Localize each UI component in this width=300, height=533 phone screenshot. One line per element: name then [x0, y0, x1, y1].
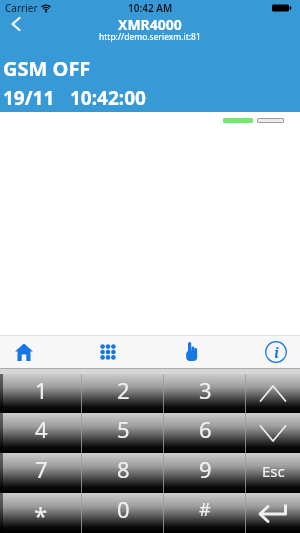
button[interactable]: 0	[82, 493, 164, 533]
button[interactable]	[246, 493, 300, 533]
staticText: 4	[35, 414, 48, 444]
button[interactable]: 8	[82, 453, 164, 493]
button[interactable]	[246, 413, 300, 453]
button[interactable]	[179, 339, 205, 365]
staticText: http://demo.seriexm.it:81	[99, 31, 201, 43]
staticText: 6	[199, 414, 212, 444]
staticText: 19/11	[3, 85, 55, 111]
staticText: 9	[199, 454, 212, 484]
button[interactable]: 9	[164, 453, 246, 493]
button[interactable]: i	[263, 339, 289, 365]
staticText: GSM OFF	[3, 55, 91, 82]
staticText: Esc	[262, 461, 285, 481]
staticText: 10:42:00	[70, 85, 146, 111]
button[interactable]: #	[164, 493, 246, 533]
staticText: 2	[117, 375, 130, 405]
button[interactable]	[95, 339, 121, 365]
staticText: 0	[117, 494, 130, 524]
button[interactable]: 4	[0, 413, 82, 453]
staticText: 3	[199, 375, 212, 405]
staticText: XMR4000	[118, 15, 182, 34]
button[interactable]: 5	[82, 413, 164, 453]
staticText: #	[199, 497, 211, 522]
button[interactable]: 2	[82, 374, 164, 413]
button[interactable]	[246, 374, 300, 413]
staticText: 5	[117, 414, 130, 444]
staticText: *	[34, 499, 48, 532]
button[interactable]: 6	[164, 413, 246, 453]
button[interactable]: 1	[0, 374, 82, 413]
staticText: 7	[35, 454, 48, 484]
staticText: i	[274, 343, 279, 362]
button[interactable]: 3	[164, 374, 246, 413]
staticText: Carrier	[5, 1, 38, 15]
staticText: 1	[35, 375, 48, 405]
button[interactable]: *	[0, 493, 82, 533]
button[interactable]	[6, 13, 26, 34]
staticText: 10:42 AM	[128, 1, 173, 15]
staticText: 8	[117, 454, 130, 484]
button[interactable]: 7	[0, 453, 82, 493]
button[interactable]	[11, 339, 37, 365]
button[interactable]: Esc	[246, 453, 300, 493]
